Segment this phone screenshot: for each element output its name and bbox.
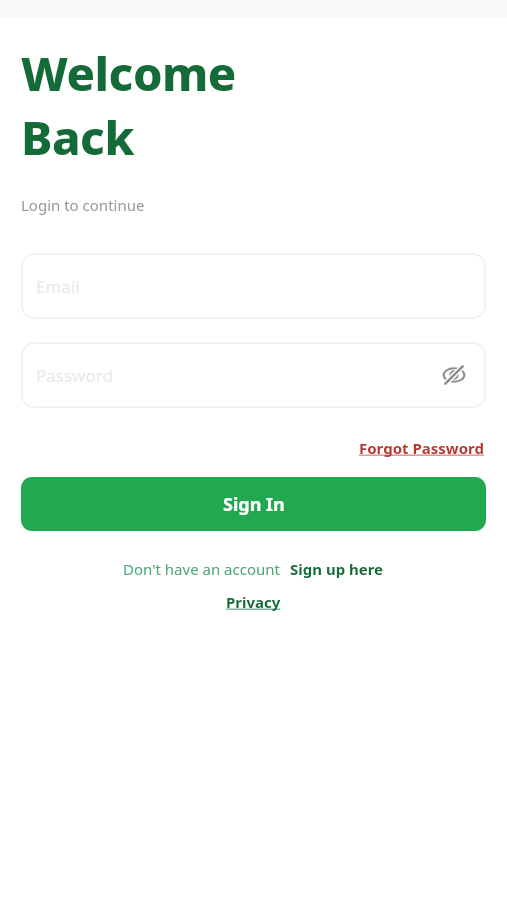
button[interactable]: Privacy	[226, 592, 281, 612]
button[interactable]: Password	[21, 342, 486, 408]
staticText: Sign up here	[290, 559, 384, 579]
button[interactable]: Sign up here	[290, 559, 384, 579]
staticText: Back	[21, 105, 134, 169]
staticText: Email	[36, 275, 80, 298]
staticText: Don't have an account	[123, 559, 280, 579]
staticText: Welcome	[21, 41, 236, 105]
button[interactable]: Show password	[437, 358, 471, 392]
staticText: Sign In	[223, 492, 285, 517]
staticText: Password	[36, 364, 113, 387]
staticText: Privacy	[226, 592, 281, 612]
staticText: Login to continue	[21, 195, 145, 215]
button[interactable]: Sign In	[21, 477, 486, 531]
button[interactable]: Forgot Password	[357, 436, 486, 460]
button[interactable]: Email	[21, 253, 486, 319]
staticText: Forgot Password	[359, 438, 484, 458]
